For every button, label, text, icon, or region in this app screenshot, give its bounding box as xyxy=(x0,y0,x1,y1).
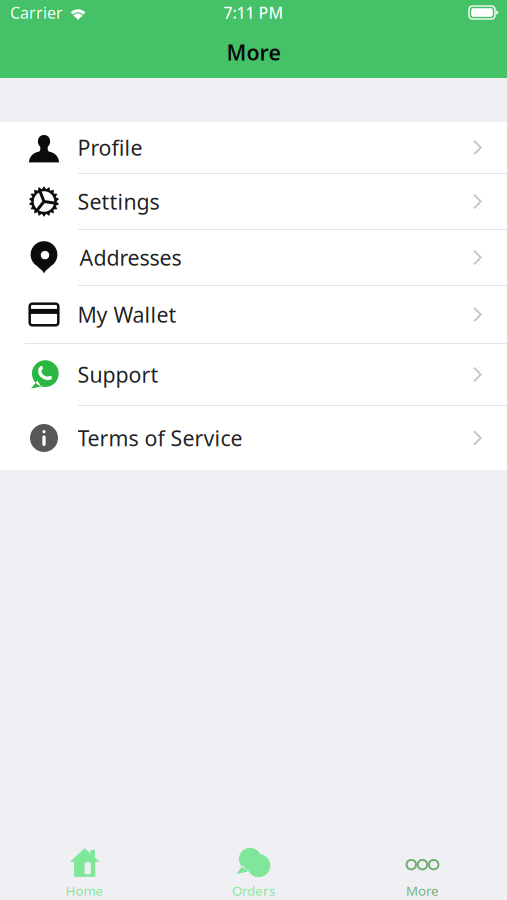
button[interactable]: My Wallet xyxy=(0,286,507,343)
button[interactable]: Support xyxy=(0,344,507,405)
staticText: Orders xyxy=(232,882,275,899)
button[interactable]: More xyxy=(338,843,507,900)
button[interactable]: Profile xyxy=(0,122,507,173)
button[interactable]: Addresses xyxy=(0,230,507,285)
staticText: Settings xyxy=(77,187,159,216)
staticText: 7:11 PM xyxy=(223,2,283,23)
button[interactable]: Orders xyxy=(169,843,338,900)
staticText: More xyxy=(226,38,280,66)
staticText: Support xyxy=(77,360,158,389)
staticText: Addresses xyxy=(79,243,181,272)
staticText: Carrier xyxy=(10,2,63,23)
button[interactable]: Terms of Service xyxy=(0,406,507,470)
button[interactable]: Settings xyxy=(0,174,507,229)
staticText: Terms of Service xyxy=(77,424,242,452)
staticText: Profile xyxy=(77,133,142,162)
staticText: More xyxy=(406,882,439,899)
staticText: My Wallet xyxy=(77,300,176,329)
staticText: Home xyxy=(65,882,103,899)
button[interactable]: Home xyxy=(0,843,169,900)
